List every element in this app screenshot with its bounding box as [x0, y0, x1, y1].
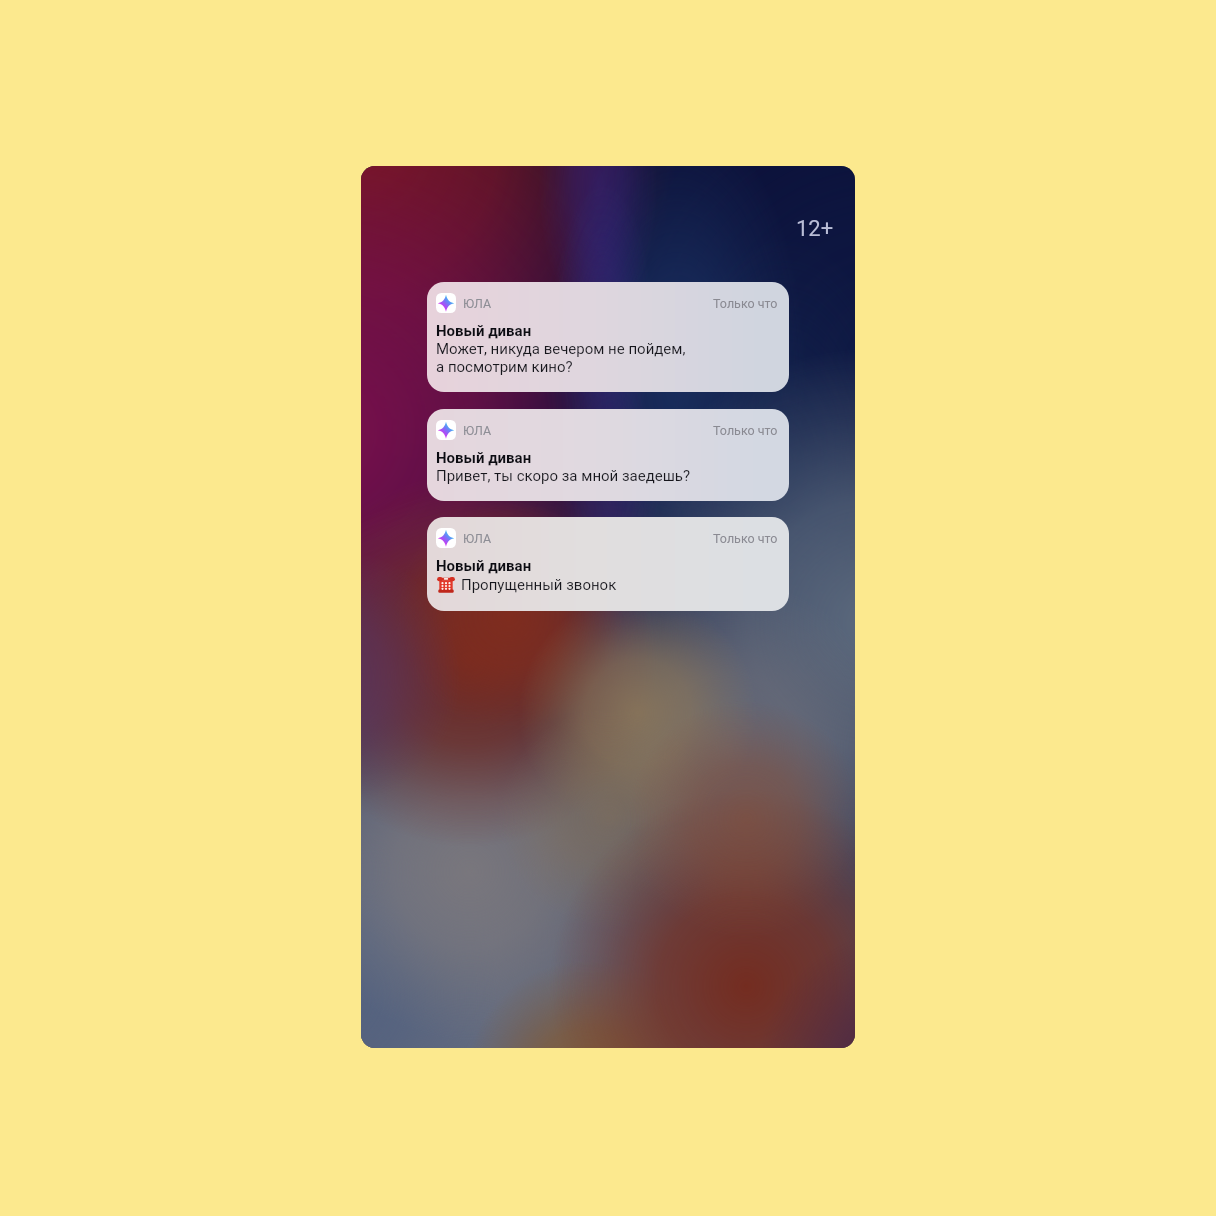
staticText: Привет, ты скоро за мной заедешь? — [436, 467, 691, 485]
staticText: 12+ — [796, 216, 834, 242]
staticText: Только что — [713, 296, 778, 311]
staticText: ЮЛА — [463, 296, 492, 311]
staticText: Только что — [713, 531, 778, 546]
button[interactable]: ЮЛА — [427, 409, 789, 501]
staticText: Новый диван — [436, 557, 532, 575]
staticText: а посмотрим кино? — [436, 358, 573, 376]
staticText: Только что — [713, 423, 778, 438]
button[interactable]: ЮЛА — [427, 282, 789, 392]
staticText: Новый диван — [436, 449, 532, 467]
staticText: Новый диван — [436, 322, 532, 340]
button[interactable]: 12+ — [784, 212, 855, 246]
staticText: ЮЛА — [463, 423, 492, 438]
button[interactable]: ЮЛА — [427, 517, 789, 611]
staticText: ЮЛА — [463, 531, 492, 546]
staticText: Пропущенный звонок — [461, 576, 617, 594]
staticText: Может, никуда вечером не пойдем, — [436, 340, 686, 358]
